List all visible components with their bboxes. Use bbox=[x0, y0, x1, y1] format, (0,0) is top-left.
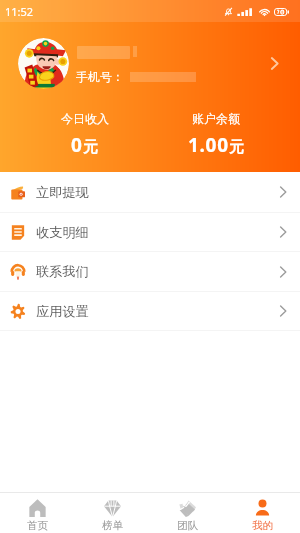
button[interactable]: 收支明细 bbox=[0, 213, 300, 252]
staticText: 0 bbox=[71, 132, 83, 158]
button[interactable]: 榜单 bbox=[75, 493, 150, 533]
staticText: 团队 bbox=[177, 519, 198, 532]
staticText: 收支明细 bbox=[36, 224, 89, 241]
button[interactable]: 我的 bbox=[225, 493, 300, 533]
staticText: 11:52 bbox=[5, 4, 34, 19]
staticText: 立即提现 bbox=[36, 184, 89, 201]
button[interactable]: 联系我们 bbox=[0, 252, 300, 292]
button[interactable]: 立即提现 bbox=[0, 172, 300, 213]
staticText: 元 bbox=[229, 138, 244, 157]
button[interactable]: 手机号： bbox=[0, 22, 300, 96]
staticText: 1.00 bbox=[188, 132, 229, 158]
button[interactable]: 团队 bbox=[150, 493, 225, 533]
staticText: 榜单 bbox=[102, 519, 123, 532]
staticText: 我的 bbox=[252, 519, 273, 532]
staticText: 联系我们 bbox=[36, 263, 89, 280]
staticText: 应用设置 bbox=[36, 303, 89, 320]
staticText: 元 bbox=[83, 138, 98, 157]
staticText: 手机号： bbox=[76, 69, 124, 84]
staticText: 账户余额 bbox=[192, 111, 240, 126]
button[interactable]: 应用设置 bbox=[0, 292, 300, 331]
button[interactable]: 首页 bbox=[0, 493, 75, 533]
staticText: 今日收入 bbox=[61, 111, 109, 126]
staticText: 首页 bbox=[27, 519, 48, 532]
